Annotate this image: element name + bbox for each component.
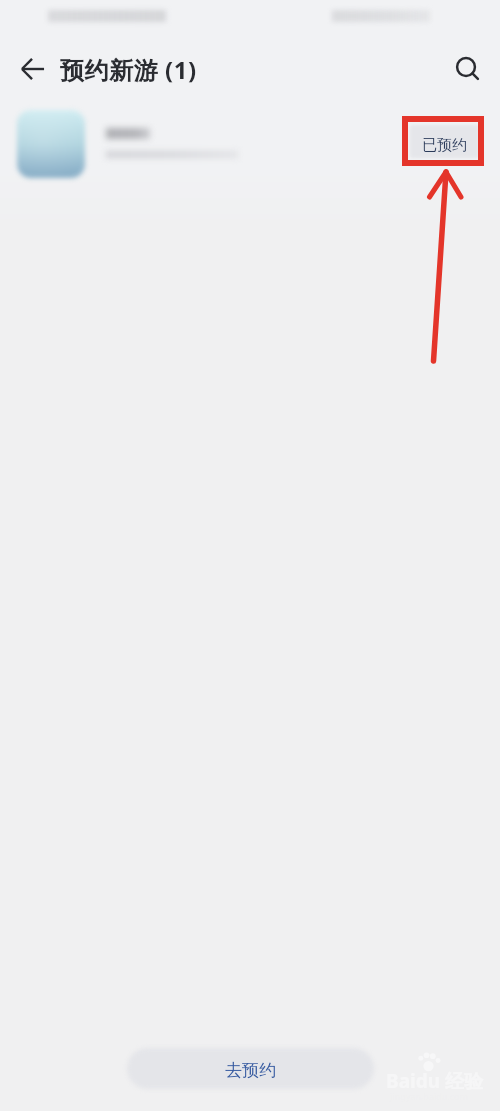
button[interactable]: Search xyxy=(438,41,494,97)
staticText: 已预约 xyxy=(422,136,467,155)
button[interactable]: 已预约 xyxy=(410,125,479,158)
staticText: 去预约 xyxy=(225,1060,276,1081)
button[interactable]: 去预约 xyxy=(127,1048,374,1089)
staticText: 预约新游 (1) xyxy=(60,53,197,86)
button[interactable]: 已预约 xyxy=(0,96,500,192)
button[interactable]: Back xyxy=(0,41,60,97)
